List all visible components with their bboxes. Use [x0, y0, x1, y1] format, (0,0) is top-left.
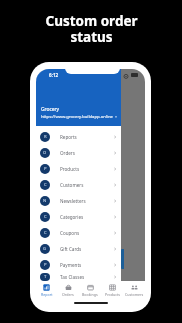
- staticText: https://www.grocery.buildapp.online: [41, 114, 113, 120]
- staticText: Customers: [125, 292, 144, 297]
- staticText: Report: [41, 292, 53, 297]
- button[interactable]: P: [36, 161, 121, 177]
- staticText: C: [44, 182, 47, 188]
- staticText: Payments: [60, 262, 82, 268]
- staticText: 6:12: [49, 72, 59, 78]
- other: Orders: [65, 284, 72, 291]
- button[interactable]: Customers: [123, 281, 145, 300]
- staticText: Products: [60, 166, 80, 172]
- button[interactable]: O: [36, 145, 121, 161]
- staticText: Orders: [60, 150, 75, 156]
- other: Customers: [131, 284, 138, 291]
- button[interactable]: G: [36, 241, 121, 257]
- button[interactable]: Report: [36, 281, 57, 300]
- other: Products: [109, 284, 116, 291]
- button[interactable]: Bookings: [79, 281, 101, 300]
- staticText: Grocery: [41, 106, 60, 113]
- staticText: Bookings: [82, 292, 98, 297]
- staticText: C: [44, 214, 47, 220]
- staticText: C: [44, 230, 47, 236]
- button[interactable]: C: [36, 225, 121, 241]
- other: Bookings: [87, 284, 94, 291]
- button[interactable]: Products: [101, 281, 123, 300]
- button[interactable]: R: [36, 129, 121, 145]
- button[interactable]: Orders: [57, 281, 79, 300]
- staticText: Customers: [60, 182, 84, 188]
- staticText: G: [43, 246, 47, 252]
- button[interactable]: N: [36, 193, 121, 209]
- staticText: N: [43, 198, 47, 204]
- button[interactable]: C: [36, 209, 121, 225]
- staticText: P: [44, 262, 47, 268]
- staticText: O: [43, 150, 47, 156]
- staticText: Custom order status: [45, 12, 138, 46]
- button[interactable]: C: [36, 177, 121, 193]
- staticText: P: [44, 166, 47, 172]
- staticText: Reports: [60, 134, 77, 140]
- button[interactable]: T: [36, 273, 121, 281]
- staticText: Tax Classes: [60, 274, 85, 280]
- staticText: Newsletters: [60, 198, 86, 204]
- staticText: Gift Cards: [60, 246, 82, 252]
- staticText: Categories: [60, 214, 84, 220]
- staticText: Coupons: [60, 230, 80, 236]
- other: Report: [43, 284, 50, 291]
- staticText: Products: [105, 292, 120, 297]
- staticText: T: [44, 274, 47, 280]
- staticText: Orders: [62, 292, 74, 297]
- staticText: R: [44, 134, 47, 140]
- button[interactable]: P: [36, 257, 121, 273]
